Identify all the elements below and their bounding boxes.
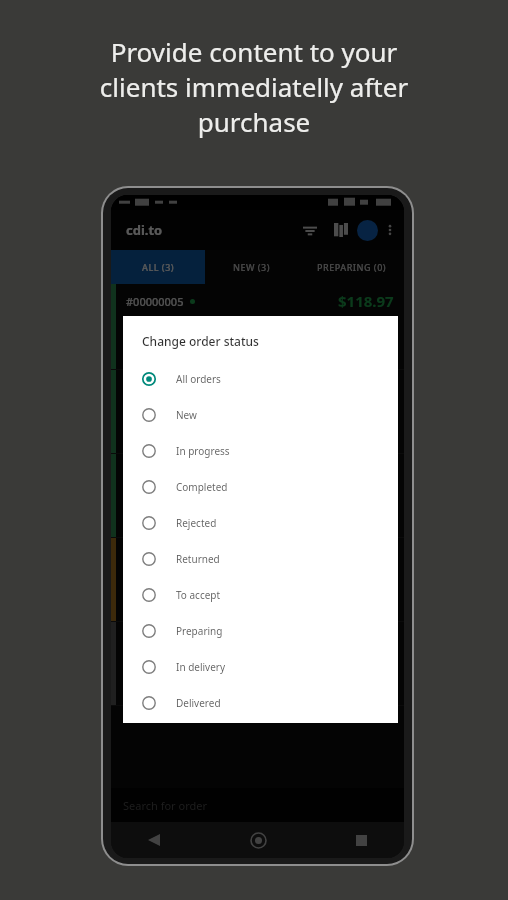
- staticText: Delivery: [126, 518, 161, 530]
- button[interactable]: PREPARING (0): [299, 250, 404, 284]
- staticText: ALL (3): [142, 261, 175, 273]
- staticText: 00121, St Paul: [126, 666, 186, 678]
- button[interactable]: Completed: [142, 469, 384, 505]
- staticText: NEW (3): [233, 261, 271, 273]
- staticText: #00000005: [126, 294, 184, 309]
- staticText: Search for order: [123, 798, 208, 813]
- button[interactable]: In delivery: [142, 649, 384, 685]
- button[interactable]: In progress: [142, 433, 384, 469]
- button[interactable]: Home: [245, 827, 271, 853]
- button[interactable]: Filter: [297, 217, 323, 243]
- staticText: Change order status: [142, 333, 259, 349]
- staticText: 00121, St Paul: [126, 328, 186, 340]
- staticText: cdi.to: [126, 221, 163, 239]
- staticText: #00000004: [126, 380, 184, 395]
- staticText: #00000002: [126, 548, 184, 563]
- staticText: To accept: [176, 588, 221, 602]
- staticText: In progress: [176, 444, 230, 458]
- button[interactable]: Preparing: [142, 613, 384, 649]
- staticText: Completed: [176, 480, 228, 494]
- staticText: John Smith: [126, 486, 172, 498]
- staticText: PREPARING (0): [317, 261, 387, 273]
- staticText: Delivered: [176, 696, 221, 710]
- staticText: Delivery: [126, 686, 161, 698]
- button[interactable]: Map: [328, 217, 354, 243]
- button[interactable]: NEW (3): [205, 250, 299, 284]
- button[interactable]: To accept: [142, 577, 384, 613]
- staticText: clients immediatelly after: [30, 69, 478, 104]
- staticText: New: [176, 408, 197, 422]
- staticText: Rejected: [176, 516, 217, 530]
- staticText: Provide content to your: [30, 34, 478, 69]
- button[interactable]: Delivered: [142, 685, 384, 721]
- staticText: Preparing: [176, 624, 223, 638]
- staticText: purchase: [30, 104, 478, 139]
- staticText: 00121, St Paul: [126, 582, 186, 594]
- staticText: In delivery: [176, 660, 226, 674]
- staticText: John Smith: [126, 402, 172, 414]
- button[interactable]: Rejected: [142, 505, 384, 541]
- button[interactable]: More options: [381, 221, 399, 239]
- staticText: Delivery: [126, 434, 161, 446]
- staticText: $118.97: [338, 291, 394, 311]
- button[interactable]: Back: [141, 827, 167, 853]
- staticText: #00000001: [126, 632, 184, 647]
- button[interactable]: Returned: [142, 541, 384, 577]
- staticText: Returned: [176, 552, 220, 566]
- button[interactable]: Account: [357, 220, 378, 241]
- button[interactable]: Recents: [348, 827, 374, 853]
- button[interactable]: ALL (3): [111, 250, 205, 284]
- staticText: John Smith: [126, 654, 172, 666]
- staticText: 00121, St Paul: [126, 414, 186, 426]
- button[interactable]: New: [142, 397, 384, 433]
- staticText: All orders: [176, 372, 221, 386]
- button[interactable]: All orders: [142, 361, 384, 397]
